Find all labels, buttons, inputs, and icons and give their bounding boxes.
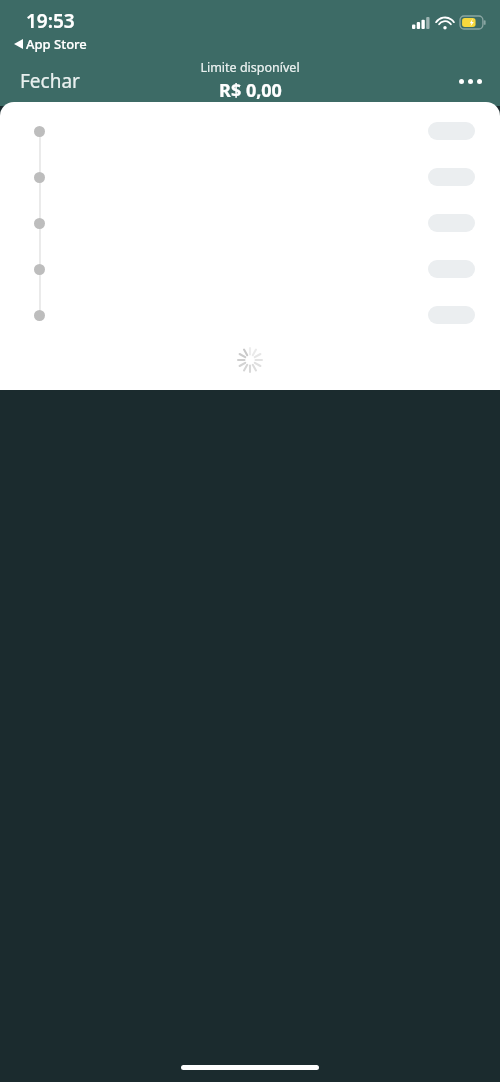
button[interactable]: Fechar (0, 62, 90, 100)
button[interactable]: More options (441, 65, 500, 98)
staticText: Fechar (20, 68, 80, 94)
button[interactable] (0, 120, 500, 142)
staticText: App Store (26, 35, 87, 53)
button[interactable] (0, 258, 500, 280)
button[interactable] (0, 212, 500, 234)
button[interactable]: Back to App Store (14, 35, 87, 53)
staticText: 19:53 (26, 8, 75, 34)
staticText: Limite disponível (200, 59, 300, 76)
staticText: R$ 0,00 (219, 78, 282, 103)
button[interactable] (0, 166, 500, 188)
button[interactable] (0, 304, 500, 326)
